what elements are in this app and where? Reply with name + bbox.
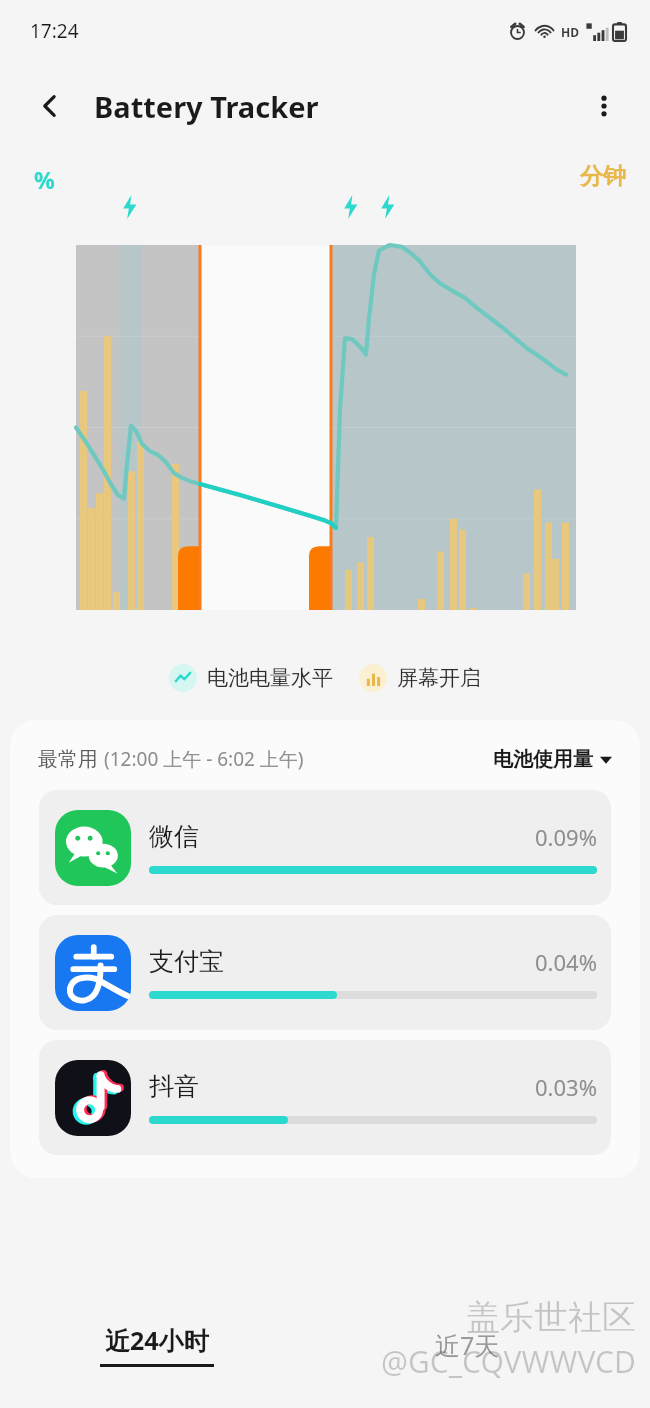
- staticText: 电池电量水平: [207, 665, 333, 691]
- staticText: 微信: [149, 821, 199, 852]
- button[interactable]: 微信: [39, 790, 611, 905]
- button[interactable]: 电池使用量: [493, 747, 612, 772]
- staticText: (12:00 上午 - 6:02 上午): [104, 746, 304, 772]
- staticText: 0.09%: [535, 822, 597, 852]
- button[interactable]: Back: [26, 82, 74, 130]
- staticText: 支付宝: [149, 946, 224, 977]
- staticText: 分钟: [580, 162, 626, 191]
- button[interactable]: 支付宝: [39, 915, 611, 1030]
- button[interactable]: 屏幕开启: [359, 664, 481, 692]
- button[interactable]: 近24小时: [100, 1323, 214, 1367]
- staticText: 近24小时: [105, 1323, 209, 1357]
- staticText: 抖音: [149, 1071, 199, 1102]
- button[interactable]: 抖音: [39, 1040, 611, 1155]
- staticText: 0.03%: [535, 1072, 597, 1102]
- staticText: 17:24: [30, 18, 79, 44]
- staticText: 近7天: [435, 1328, 500, 1362]
- button[interactable]: More options: [580, 82, 628, 130]
- staticText: 盖乐世社区: [466, 1296, 636, 1339]
- staticText: 0.04%: [535, 947, 597, 977]
- staticText: 屏幕开启: [397, 665, 481, 691]
- staticText: Battery Tracker: [94, 87, 319, 126]
- button[interactable]: 近7天: [435, 1328, 500, 1362]
- staticText: 最常用: [38, 747, 98, 772]
- staticText: %: [34, 164, 55, 195]
- staticText: HD: [561, 24, 579, 40]
- staticText: 电池使用量: [493, 747, 593, 772]
- button[interactable]: 电池电量水平: [169, 664, 333, 692]
- staticText: @GC_CQVWWVCD: [381, 1341, 636, 1382]
